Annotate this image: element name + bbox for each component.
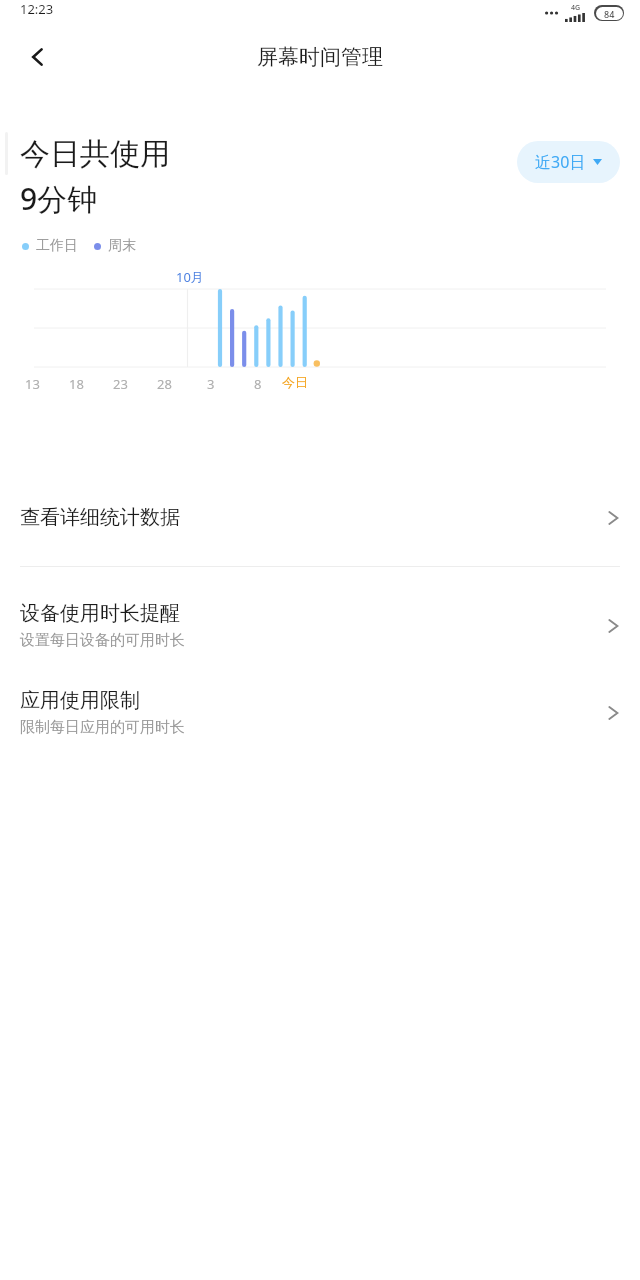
staticText: 周末 (108, 237, 136, 255)
staticText: 屏幕时间管理 (257, 44, 383, 70)
button[interactable]: 近30日 (517, 141, 620, 183)
staticText: 9分钟 (20, 178, 98, 219)
staticText: 13 (25, 375, 40, 393)
staticText: 近30日 (535, 151, 586, 173)
staticText: 限制每日应用的可用时长 (20, 718, 185, 737)
staticText: 工作日 (36, 237, 78, 255)
staticText: 18 (69, 375, 84, 393)
staticText: 应用使用限制 (20, 688, 140, 713)
staticText: 3 (207, 375, 215, 393)
staticText: 8 (254, 375, 262, 393)
staticText: 12:23 (20, 0, 54, 18)
staticText: 28 (157, 375, 172, 393)
staticText: 今日 (282, 374, 308, 390)
staticText: 84 (604, 8, 615, 20)
staticText: 设置每日设备的可用时长 (20, 631, 185, 650)
staticText: 4G (571, 3, 581, 13)
button[interactable]: Back (12, 31, 64, 83)
staticText: 今日共使用 (20, 135, 170, 173)
staticText: 查看详细统计数据 (20, 505, 607, 530)
button[interactable]: 设备使用时长提醒 (0, 597, 640, 654)
button[interactable]: 查看详细统计数据 (0, 499, 640, 536)
staticText: 10月 (176, 268, 204, 286)
staticText: 23 (113, 375, 128, 393)
button[interactable]: 应用使用限制 (0, 684, 640, 741)
staticText: 设备使用时长提醒 (20, 601, 180, 626)
